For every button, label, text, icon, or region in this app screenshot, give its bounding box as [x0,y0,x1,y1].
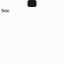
staticText: Title [1,8,9,13]
